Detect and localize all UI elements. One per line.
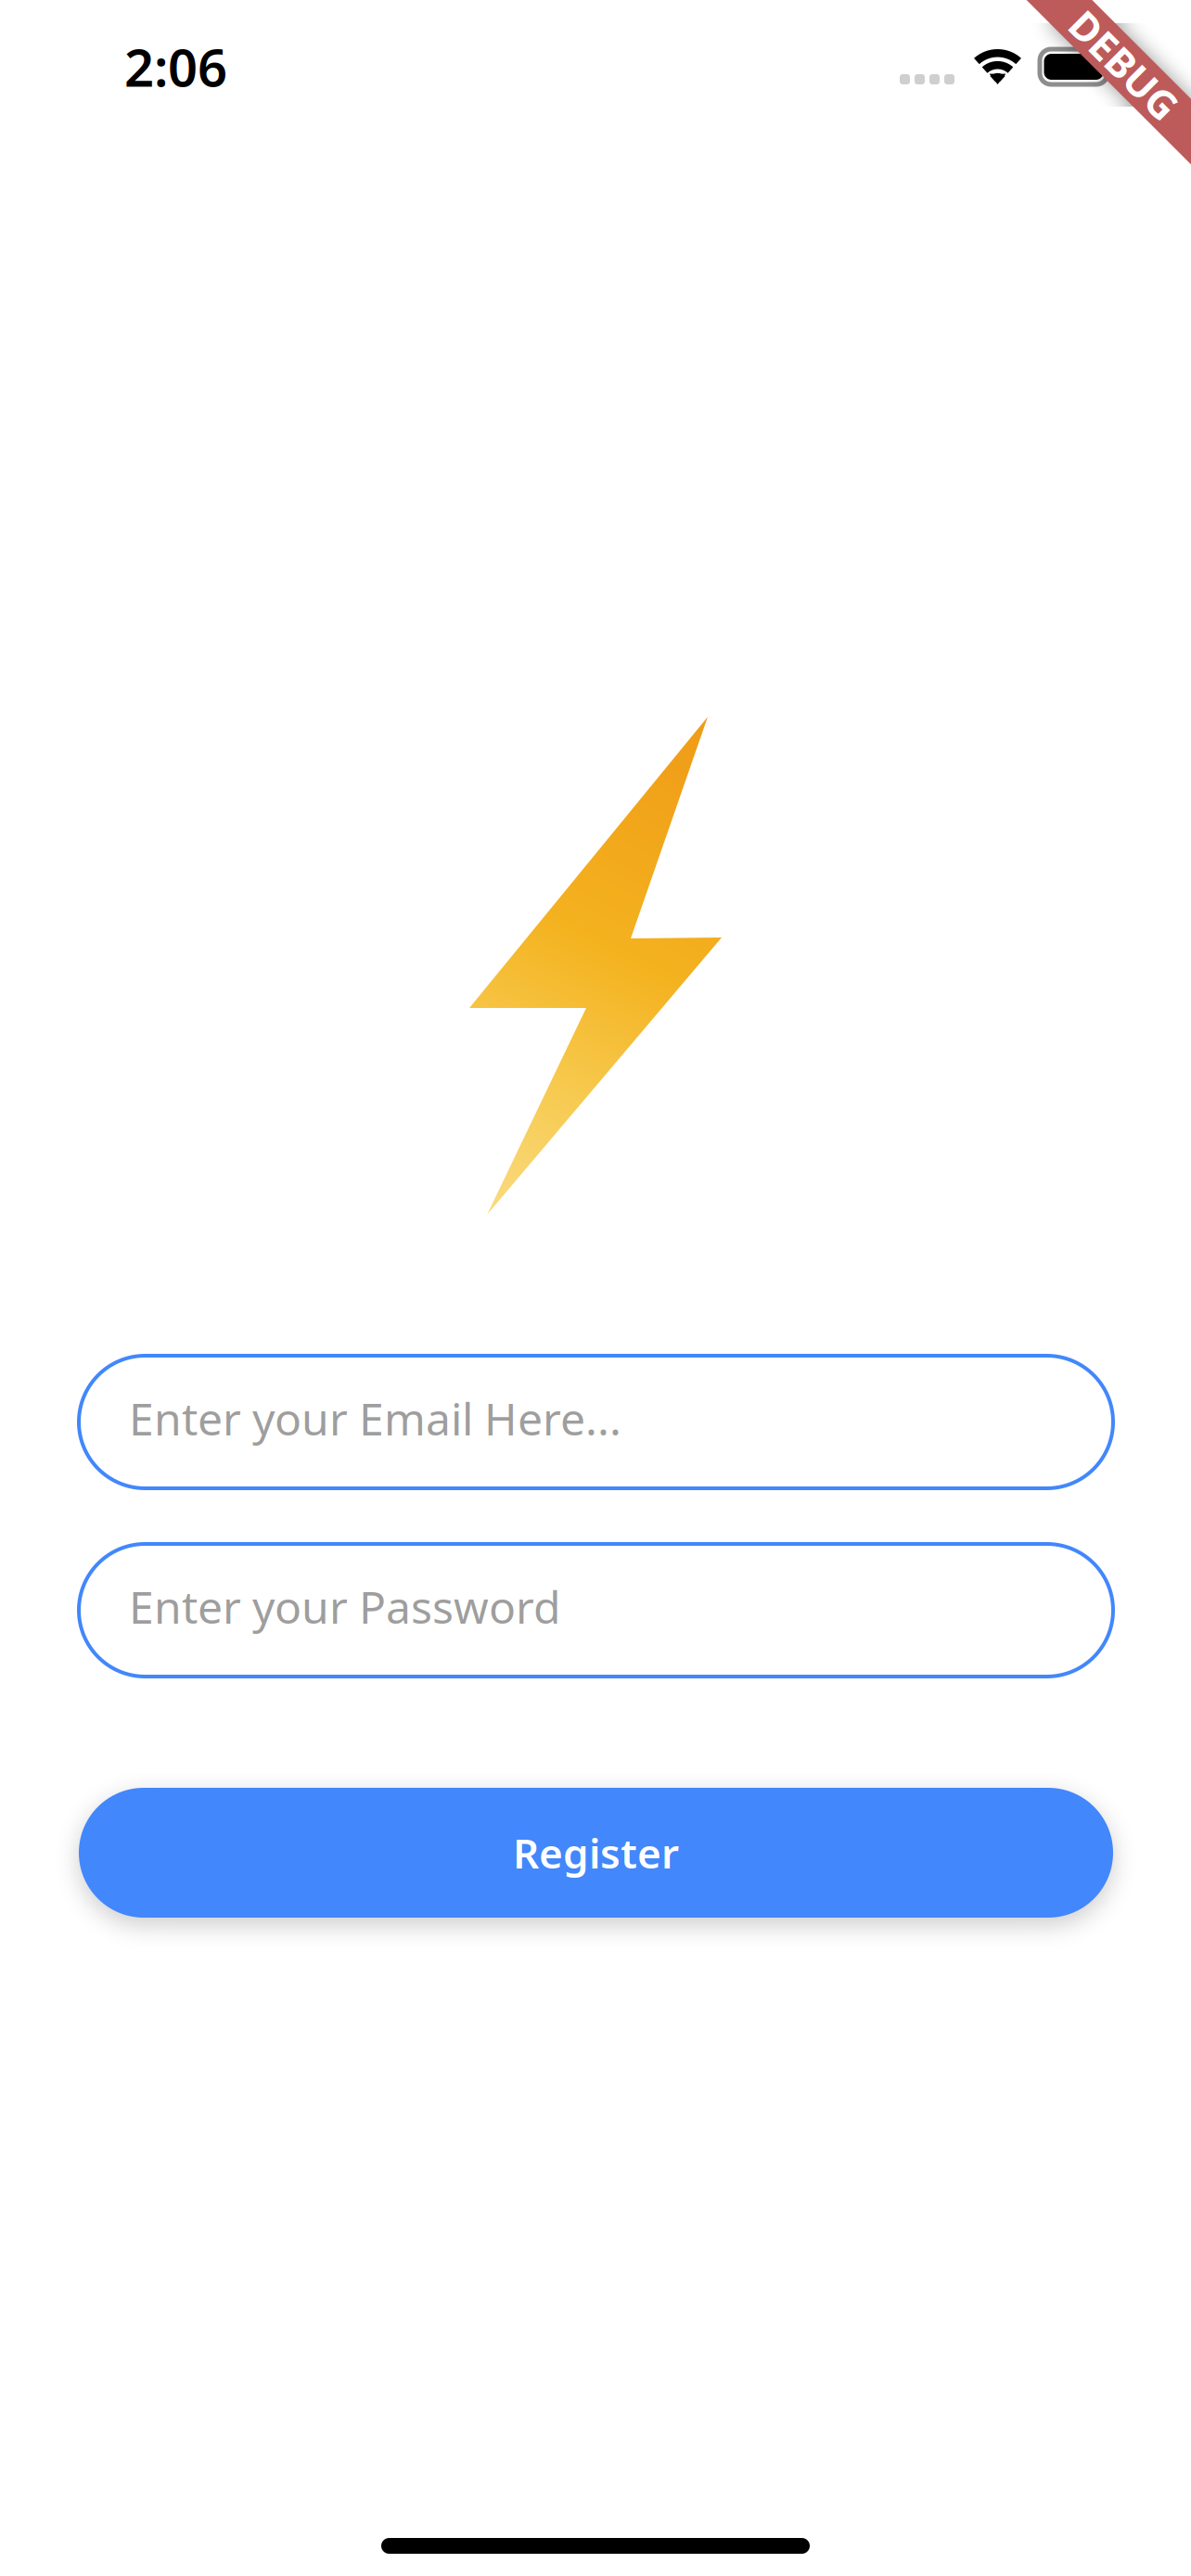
staticText: Register [513, 1826, 679, 1880]
staticText: Enter your Email Here... [129, 1389, 621, 1448]
staticText: DEBUG [1057, 39, 1191, 91]
staticText: Enter your Password [129, 1577, 561, 1636]
button[interactable]: Enter your Email Here... [79, 1356, 1113, 1488]
button[interactable]: Enter your Password [79, 1544, 1113, 1677]
staticText: 2:06 [124, 32, 227, 101]
button[interactable]: Register [79, 1788, 1113, 1918]
